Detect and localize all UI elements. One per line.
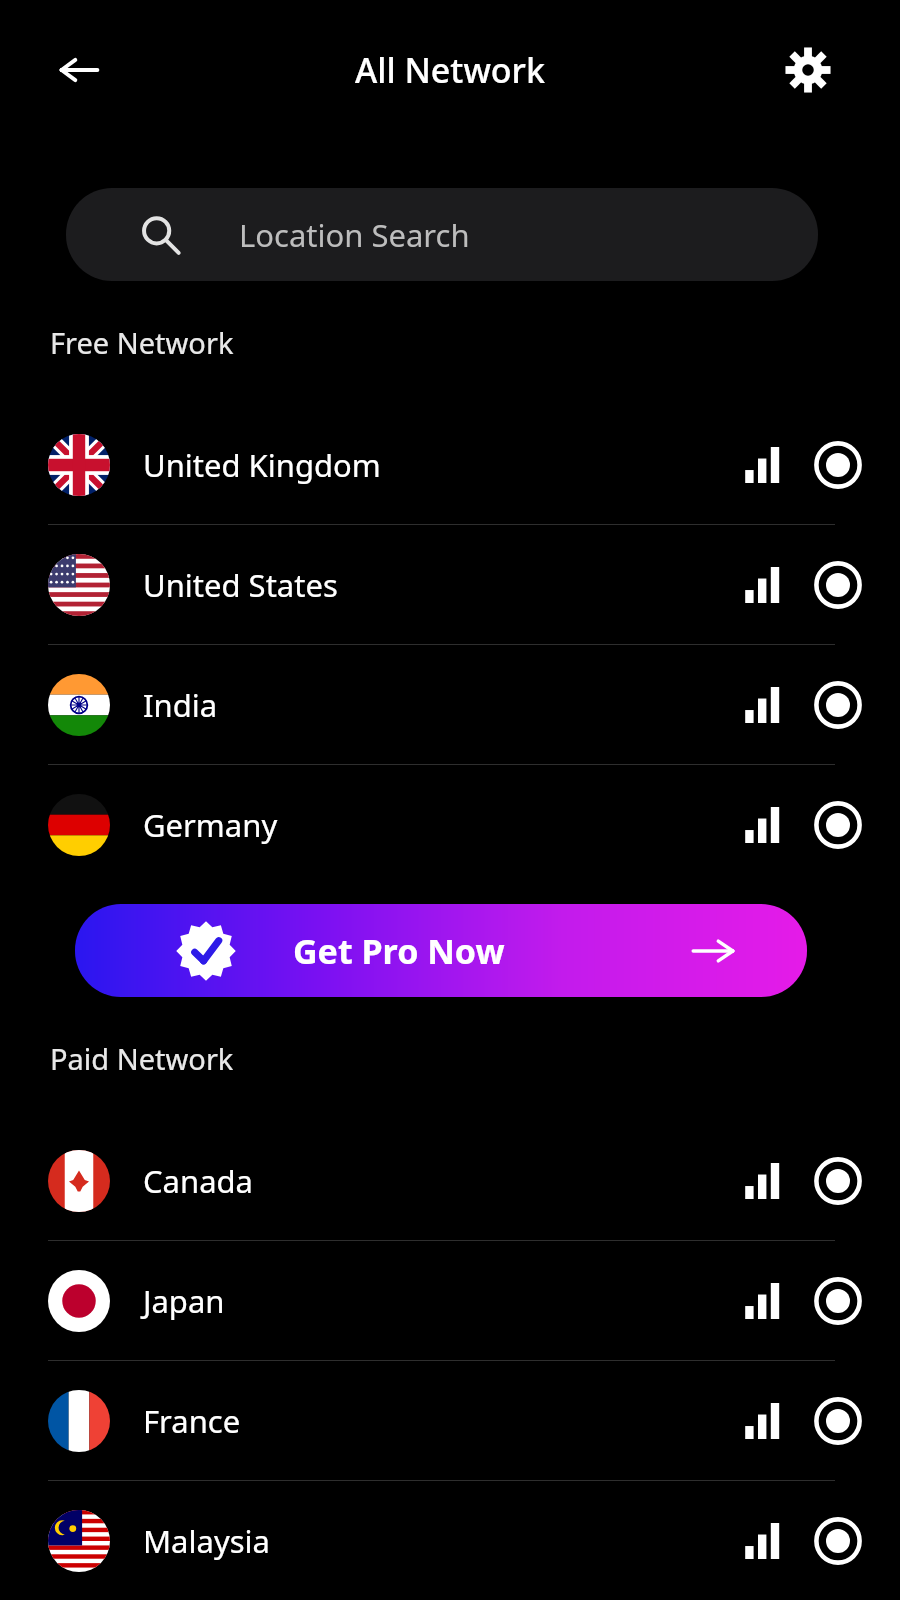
button[interactable]: United States [0, 525, 900, 644]
staticText: Free Network [50, 323, 234, 362]
staticText: Get Pro Now [293, 928, 505, 974]
button[interactable]: Canada [0, 1121, 900, 1240]
button[interactable]: Get Pro Now [75, 904, 807, 997]
button[interactable]: Japan [0, 1241, 900, 1360]
button[interactable]: Back [52, 43, 106, 97]
button[interactable]: India [0, 645, 900, 764]
staticText: Japan [143, 1280, 225, 1322]
button[interactable]: Settings [780, 42, 836, 98]
button[interactable]: Germany [0, 765, 900, 884]
staticText: Canada [143, 1160, 253, 1202]
staticText: All Network [355, 47, 545, 93]
staticText: Paid Network [50, 1039, 234, 1078]
staticText: India [143, 684, 218, 726]
button[interactable]: France [0, 1361, 900, 1480]
button[interactable]: Location Search [66, 188, 818, 281]
staticText: Malaysia [143, 1520, 270, 1562]
button[interactable]: United Kingdom [0, 405, 900, 524]
staticText: France [143, 1400, 241, 1442]
staticText: United States [143, 564, 338, 606]
staticText: Location Search [239, 214, 470, 256]
button[interactable]: Malaysia [0, 1481, 900, 1600]
staticText: United Kingdom [143, 444, 381, 486]
staticText: Germany [143, 804, 278, 846]
